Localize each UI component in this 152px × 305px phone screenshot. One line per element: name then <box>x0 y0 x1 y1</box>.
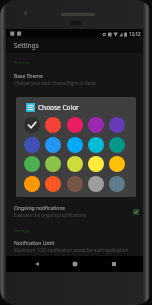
button[interactable]: Colour option 17 <box>42 174 63 194</box>
button[interactable]: Colour option 9 <box>85 135 106 155</box>
button[interactable]: Colour option 13 <box>64 154 85 174</box>
staticText: Maximum 1000 notification saved for each… <box>14 247 129 253</box>
staticText: Storage <box>14 228 30 234</box>
button[interactable]: Colour option 12 <box>42 154 63 174</box>
button[interactable]: Colour option 3 <box>64 115 85 135</box>
button[interactable]: Toggle ongoing notifications <box>131 207 141 217</box>
staticText: Settings <box>14 41 39 50</box>
staticText: Choose Color <box>38 103 79 112</box>
button[interactable]: Colour option 1 <box>21 115 42 135</box>
staticText: Evaluate the ongoing notifications <box>14 212 87 218</box>
button[interactable]: Home <box>66 256 83 272</box>
button[interactable]: Colour option 20 <box>106 174 127 194</box>
button[interactable]: Notification Limit <box>6 239 143 254</box>
button[interactable]: Colour option 19 <box>85 174 106 194</box>
button[interactable]: Colour option 11 <box>21 154 42 174</box>
button[interactable]: Colour option 5 <box>106 115 127 135</box>
staticText: Base Theme <box>14 73 43 80</box>
button[interactable]: Back <box>28 256 45 272</box>
staticText: Themes <box>14 60 30 66</box>
button[interactable]: Colour option 2 <box>42 115 63 135</box>
button[interactable]: Ongoing notifications <box>6 204 143 219</box>
button[interactable]: Colour option 8 <box>64 135 85 155</box>
staticText: Choose your best theme (light or dark) <box>14 80 96 86</box>
button[interactable]: Settings <box>6 38 143 53</box>
button[interactable]: Colour option 6 <box>21 135 42 155</box>
button[interactable]: Recent apps <box>105 256 122 272</box>
button[interactable]: Base Theme <box>6 72 143 87</box>
button[interactable]: Colour option 14 <box>85 154 106 174</box>
button[interactable]: Colour option 10 <box>106 135 127 155</box>
button[interactable]: Colour option 15 <box>106 154 127 174</box>
button[interactable]: Colour option 16 <box>21 174 42 194</box>
button[interactable]: Colour option 7 <box>42 135 63 155</box>
staticText: Ongoing notifications <box>14 205 65 212</box>
button[interactable]: Colour option 18 <box>64 174 85 194</box>
button[interactable]: Colour option 4 <box>85 115 106 135</box>
staticText: Notification Limit <box>14 240 55 247</box>
staticText: 12:12 <box>129 31 141 37</box>
